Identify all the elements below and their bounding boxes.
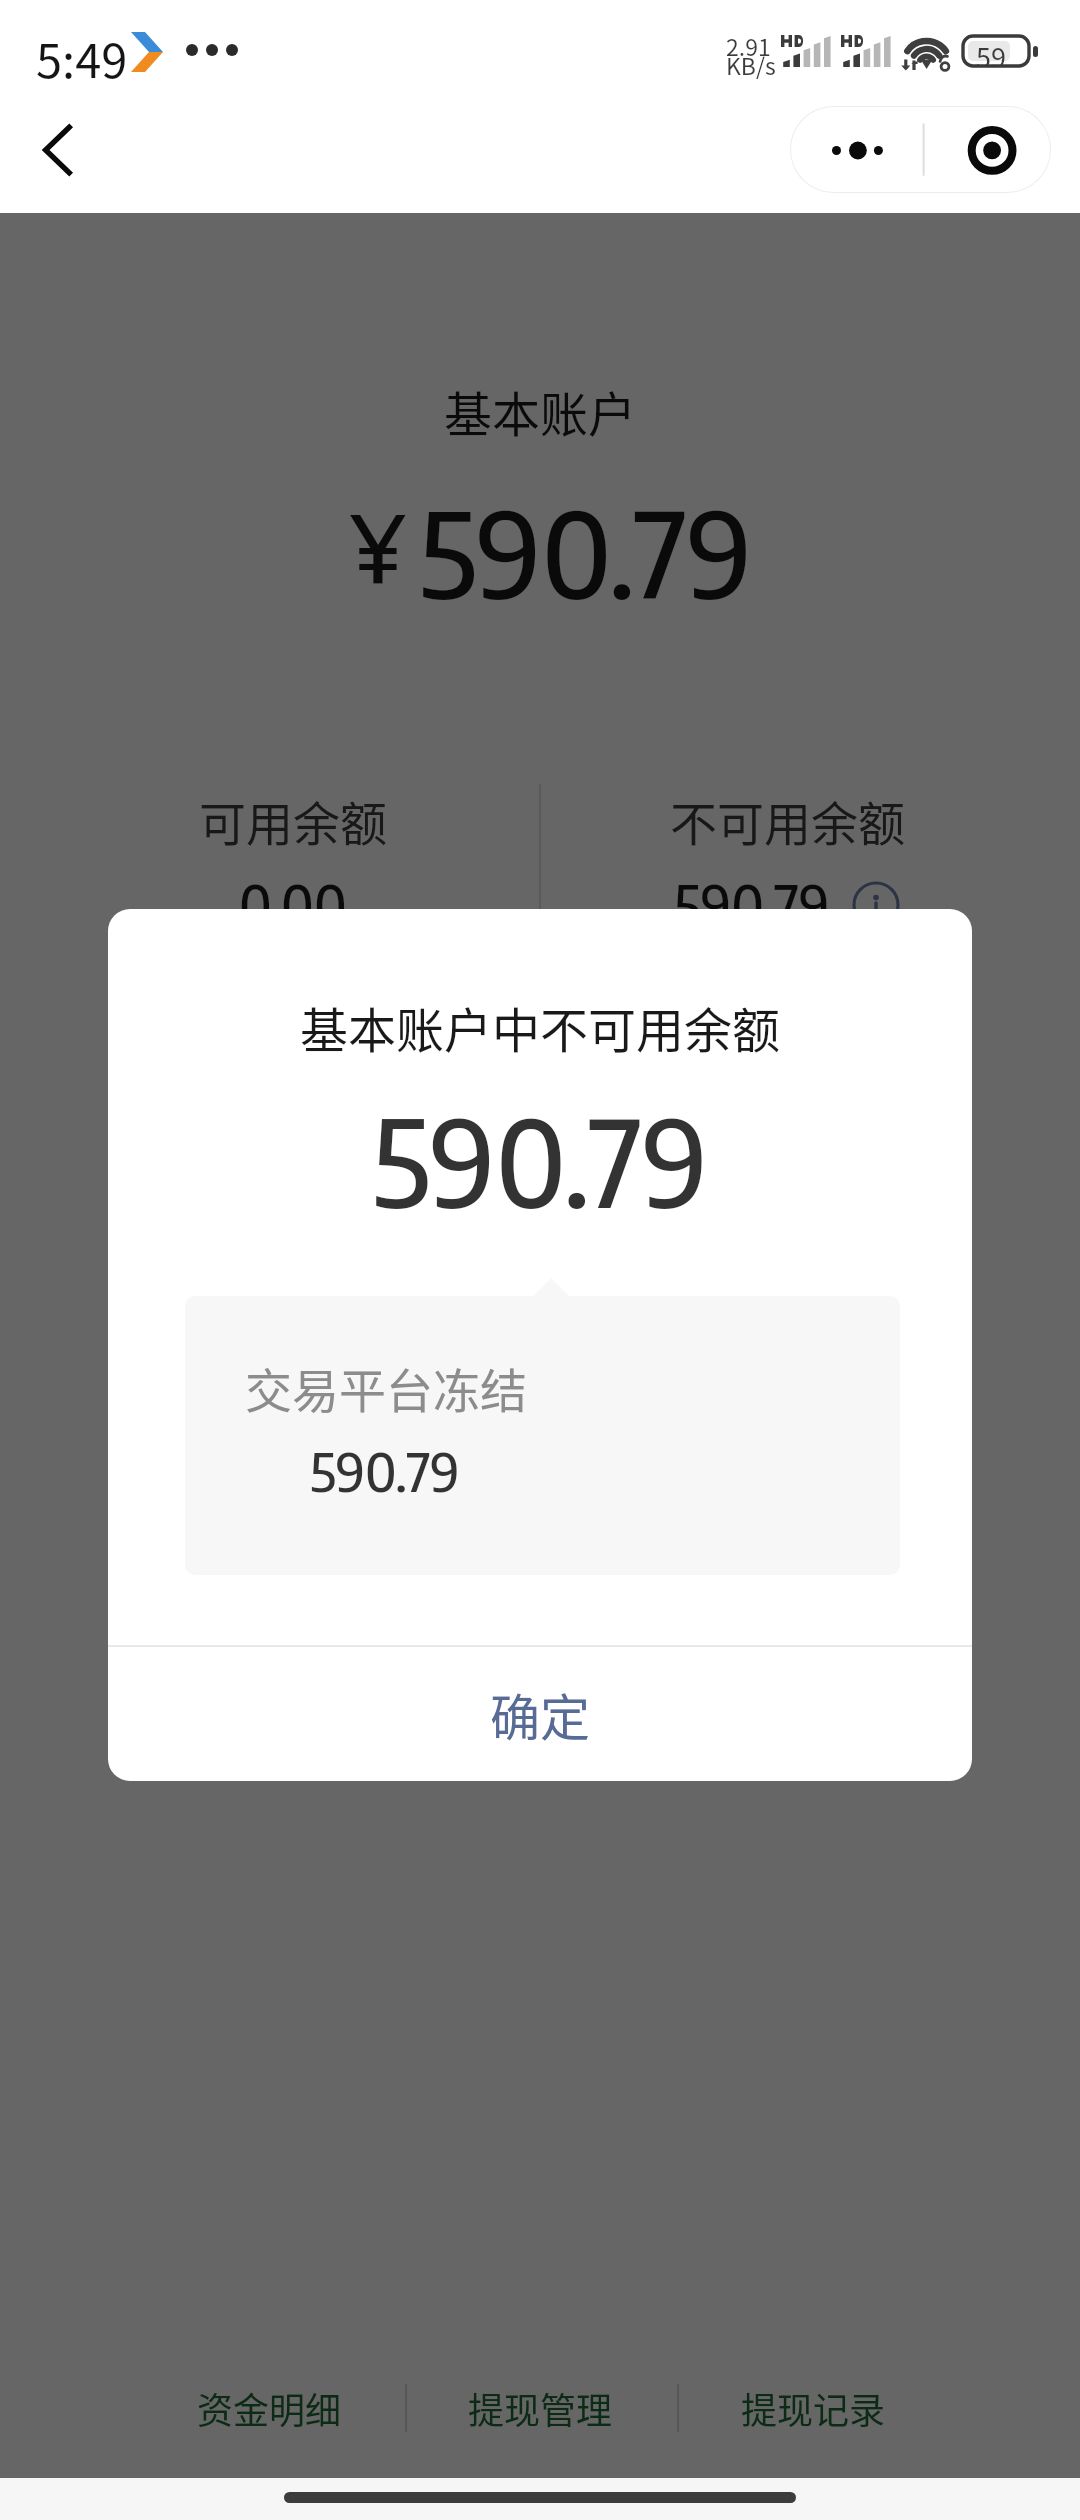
staticText: 59 — [976, 37, 1006, 67]
staticText: 590.79 — [310, 1437, 460, 1503]
staticText: ¥ — [351, 488, 405, 603]
staticText: 590.79 — [674, 870, 830, 939]
staticText: 提现记录 — [741, 2382, 886, 2434]
staticText: 590.79 — [108, 1085, 972, 1234]
staticText: KB/s — [726, 48, 776, 81]
staticText: 提现管理 — [468, 2382, 613, 2434]
staticText: 资金明细 — [197, 2382, 342, 2434]
staticText: 2.91 — [726, 29, 771, 62]
staticText: 交易平台冻结 — [245, 1353, 527, 1421]
staticText: 可用余额 — [199, 786, 387, 854]
button[interactable]: More options — [790, 106, 923, 193]
button[interactable]: 提现管理 — [430, 2350, 650, 2466]
button[interactable]: 提现记录 — [703, 2350, 923, 2466]
staticText: 0.00 — [239, 870, 347, 939]
button[interactable]: 确定 — [108, 1647, 972, 1781]
staticText: 确定 — [490, 1678, 590, 1750]
staticText: 不可用余额 — [670, 786, 905, 854]
staticText: 5:49 — [36, 23, 128, 91]
button[interactable]: Back — [0, 105, 112, 213]
button[interactable]: Info — [852, 881, 900, 929]
button[interactable]: Close mini program — [923, 106, 1051, 193]
staticText: 590.79 — [419, 477, 753, 624]
button[interactable]: 资金明细 — [159, 2350, 379, 2466]
staticText: 基本账户 — [0, 376, 1080, 446]
staticText: 基本账户中不可用余额 — [108, 992, 972, 1062]
